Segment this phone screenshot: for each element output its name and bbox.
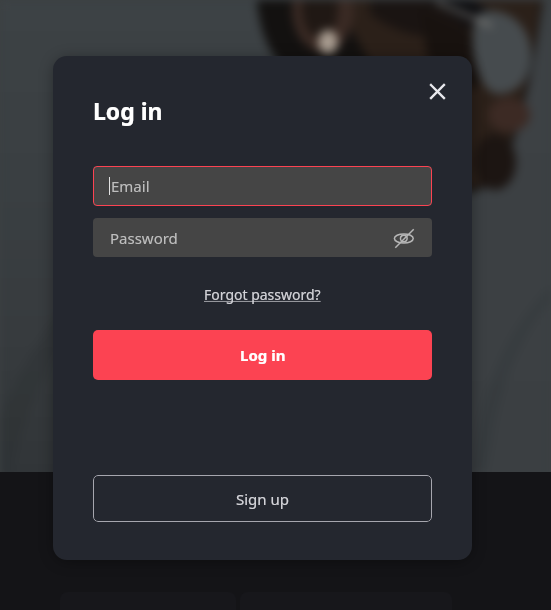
button[interactable]: Password (93, 218, 432, 257)
staticText: Log in (240, 345, 286, 365)
staticText: Log in (93, 95, 163, 126)
staticText: Password (110, 228, 178, 248)
button[interactable]: Sign up (93, 475, 432, 522)
button[interactable]: Close (421, 75, 453, 107)
button[interactable]: Show password (390, 224, 418, 252)
button[interactable]: Email (93, 166, 432, 206)
staticText: Sign up (236, 489, 289, 509)
staticText: Email (111, 176, 150, 196)
button[interactable]: Log in (93, 330, 432, 380)
button[interactable]: Forgot password? (198, 282, 327, 307)
